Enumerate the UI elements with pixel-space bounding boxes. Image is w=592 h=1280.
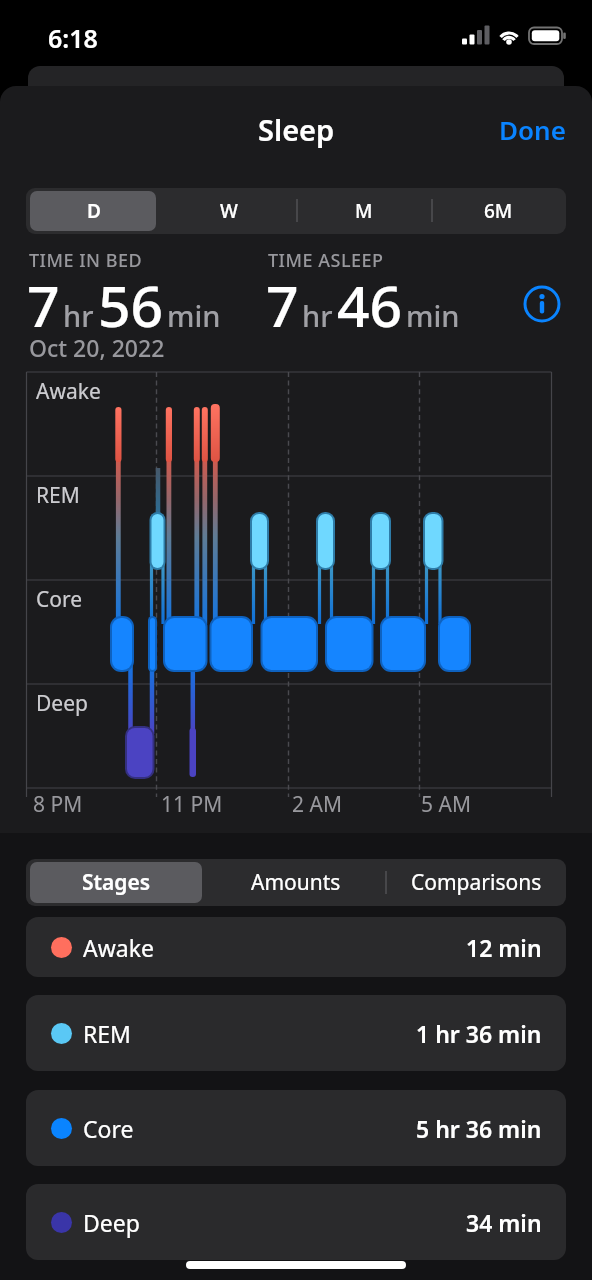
staticText: 7 <box>266 266 299 344</box>
staticText: M <box>355 198 373 224</box>
staticText: D <box>87 198 101 224</box>
staticText: 5 hr 36 min <box>416 1113 542 1144</box>
button[interactable]: Done <box>470 108 580 150</box>
staticText: TIME IN BED <box>29 248 143 273</box>
button[interactable]: Stages <box>26 859 206 906</box>
button[interactable]: D <box>26 188 161 234</box>
staticText: W <box>220 198 238 224</box>
button[interactable] <box>521 283 563 325</box>
staticText: Amounts <box>251 868 341 897</box>
staticText: Core <box>36 585 83 614</box>
staticText: Sleep <box>258 110 335 149</box>
staticText: 7 <box>27 266 60 344</box>
staticText: 2 AM <box>292 790 342 819</box>
staticText: 12 min <box>466 932 542 963</box>
staticText: 11 PM <box>161 790 223 819</box>
button[interactable]: Amounts <box>206 859 386 906</box>
staticText: REM <box>83 1018 131 1049</box>
staticText: min <box>167 296 221 335</box>
staticText: Deep <box>36 689 88 718</box>
staticText: min <box>406 296 460 335</box>
staticText: 34 min <box>466 1207 542 1238</box>
button[interactable]: W <box>161 188 296 234</box>
staticText: 6M <box>484 198 513 224</box>
staticText: Deep <box>83 1207 140 1238</box>
staticText: hr <box>302 296 333 335</box>
staticText: 56 <box>98 266 164 344</box>
staticText: Done <box>499 112 566 147</box>
button[interactable]: REM <box>26 995 566 1071</box>
staticText: 5 AM <box>421 790 471 819</box>
staticText: Stages <box>82 868 151 897</box>
button[interactable]: Awake <box>26 917 566 977</box>
button[interactable]: 6M <box>431 188 566 234</box>
staticText: 8 PM <box>33 790 83 819</box>
staticText: Core <box>83 1113 134 1144</box>
button[interactable]: Core <box>26 1090 566 1166</box>
staticText: REM <box>36 481 80 510</box>
button[interactable]: Comparisons <box>386 859 566 906</box>
staticText: TIME ASLEEP <box>268 248 384 273</box>
button[interactable]: Deep <box>26 1184 566 1260</box>
staticText: Awake <box>36 377 101 406</box>
staticText: 1 hr 36 min <box>416 1018 542 1049</box>
staticText: 46 <box>337 266 403 344</box>
staticText: Awake <box>83 932 154 963</box>
staticText: Comparisons <box>411 868 542 897</box>
button[interactable]: M <box>296 188 431 234</box>
staticText: 6:18 <box>48 21 98 55</box>
staticText: hr <box>63 296 94 335</box>
staticText: Oct 20, 2022 <box>29 332 165 363</box>
